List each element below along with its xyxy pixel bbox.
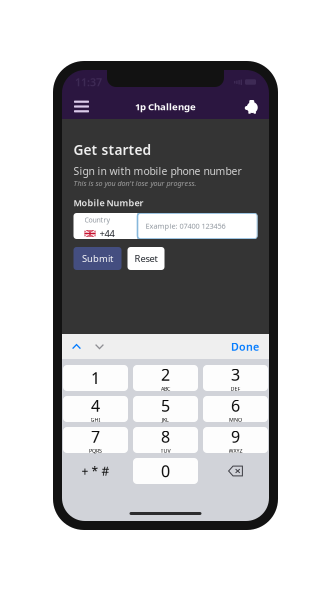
- staticText: 0: [161, 460, 170, 482]
- button[interactable]: 4: [63, 396, 128, 422]
- button[interactable]: 0: [133, 458, 198, 484]
- staticText: MNO: [229, 416, 242, 423]
- button[interactable]: Submit: [73, 247, 121, 270]
- staticText: Done: [231, 339, 259, 354]
- button[interactable]: Done: [224, 332, 266, 361]
- staticText: This is so you don't lose your progress.: [73, 178, 196, 188]
- staticText: Sign in with mobile phone number: [73, 164, 241, 178]
- button[interactable]: 5: [133, 396, 198, 422]
- staticText: Example: 07400 123456: [145, 221, 225, 231]
- staticText: Submit: [82, 252, 113, 265]
- staticText: Reset: [134, 252, 157, 265]
- staticText: 9: [231, 426, 240, 447]
- button[interactable]: Delete: [203, 458, 268, 484]
- button[interactable]: 2: [133, 365, 198, 391]
- staticText: 4: [91, 395, 100, 416]
- button[interactable]: Reset: [127, 247, 164, 270]
- staticText: 1p Challenge: [135, 100, 196, 113]
- button[interactable]: Menu: [67, 95, 96, 118]
- button[interactable]: 8: [133, 427, 198, 453]
- button[interactable]: + * #: [63, 458, 128, 484]
- staticText: 1: [91, 367, 100, 389]
- button[interactable]: 7: [63, 427, 128, 453]
- staticText: 8: [161, 426, 170, 447]
- staticText: WXYZ: [228, 447, 242, 454]
- staticText: 11:37: [75, 75, 102, 89]
- staticText: + * #: [81, 463, 109, 479]
- staticText: DEF: [230, 385, 240, 392]
- button[interactable]: 9: [203, 427, 268, 453]
- button[interactable]: Previous field: [65, 337, 88, 356]
- staticText: Get started: [73, 140, 151, 159]
- staticText: 2: [161, 364, 170, 385]
- staticText: Mobile Number: [73, 197, 143, 209]
- staticText: GHI: [90, 416, 100, 423]
- staticText: 7: [91, 426, 100, 447]
- staticText: Country: [84, 215, 110, 225]
- staticText: 5: [161, 395, 170, 416]
- staticText: 6: [231, 395, 240, 416]
- button[interactable]: 6: [203, 396, 268, 422]
- staticText: PQRS: [89, 447, 102, 454]
- button[interactable]: 3: [203, 365, 268, 391]
- staticText: JKL: [162, 416, 169, 423]
- button[interactable]: Savings: [239, 95, 264, 118]
- staticText: +44: [99, 227, 114, 240]
- staticText: TUV: [160, 447, 170, 454]
- staticText: 3: [231, 364, 240, 385]
- button[interactable]: Next field: [88, 337, 111, 356]
- staticText: ABC: [161, 385, 170, 392]
- button[interactable]: 1: [63, 365, 128, 391]
